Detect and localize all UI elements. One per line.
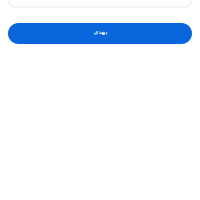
button[interactable]: يهدي bbox=[8, 23, 192, 44]
staticText: يهدي bbox=[93, 29, 107, 35]
